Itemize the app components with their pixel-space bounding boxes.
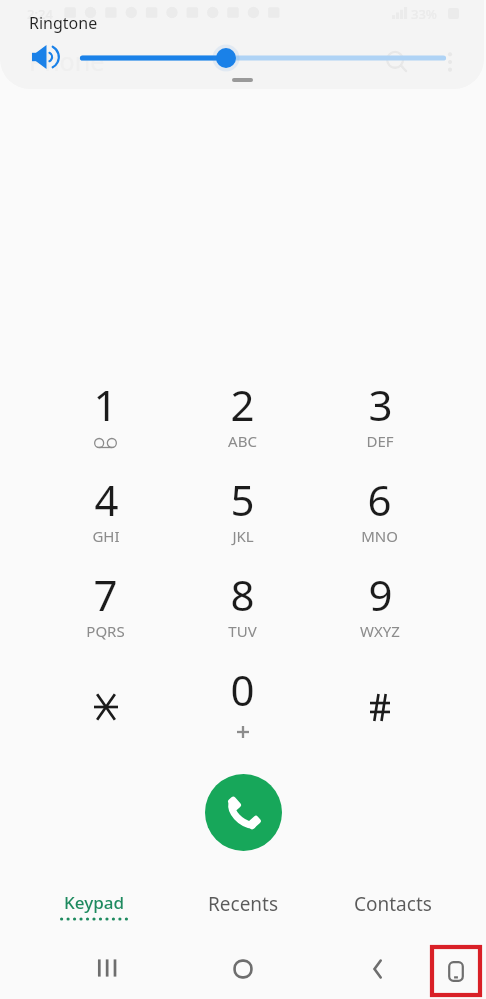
button[interactable]: Keypad xyxy=(26,891,162,939)
staticText: Recents xyxy=(208,891,279,917)
staticText: 2 xyxy=(230,376,255,433)
staticText: DEF xyxy=(366,431,394,451)
button[interactable]: Recents xyxy=(175,891,311,939)
staticText: Ringtone xyxy=(29,12,98,34)
staticText: Phone xyxy=(29,44,105,78)
button[interactable]: 7 xyxy=(37,566,174,661)
staticText: ABC xyxy=(228,431,257,451)
staticText: PQRS xyxy=(86,621,125,641)
staticText: 0 xyxy=(230,661,255,718)
staticText: MNO xyxy=(361,526,398,546)
button[interactable]: Call xyxy=(205,774,282,851)
staticText: 4 xyxy=(94,471,119,528)
button[interactable] xyxy=(37,661,174,756)
staticText: 7 xyxy=(93,566,118,623)
button[interactable]: 6 xyxy=(311,471,448,566)
button[interactable]: 5 xyxy=(174,471,311,566)
staticText: 6 xyxy=(367,471,392,528)
button[interactable]: 4 xyxy=(37,471,174,566)
staticText: 8 xyxy=(230,566,255,623)
button[interactable]: 8 xyxy=(174,566,311,661)
staticText: 3 xyxy=(368,376,393,433)
button[interactable]: Phone xyxy=(432,947,480,995)
staticText: WXYZ xyxy=(360,621,400,641)
button[interactable] xyxy=(311,661,448,756)
button[interactable]: Recent apps xyxy=(83,944,131,992)
button[interactable]: Expand volume panel xyxy=(232,78,253,82)
staticText: JKL xyxy=(232,526,254,546)
staticText: TUV xyxy=(228,621,257,641)
button[interactable]: Home xyxy=(219,945,267,993)
button[interactable] xyxy=(76,42,450,74)
staticText: 5 xyxy=(230,471,255,528)
button[interactable]: 9 xyxy=(311,566,448,661)
button[interactable]: Contacts xyxy=(325,891,461,939)
staticText: Keypad xyxy=(64,891,124,914)
staticText: GHI xyxy=(92,526,120,546)
staticText: 2:24 xyxy=(27,5,53,23)
button[interactable]: Back xyxy=(355,945,403,993)
staticText: 9 xyxy=(368,566,393,623)
staticText: Contacts xyxy=(354,891,432,917)
button[interactable]: 1 xyxy=(37,376,174,471)
button[interactable]: 3 xyxy=(311,376,448,471)
staticText: 33% xyxy=(411,5,437,23)
button[interactable]: 0 xyxy=(174,661,311,756)
button[interactable]: Mute ringtone xyxy=(32,45,61,69)
button[interactable]: 2 xyxy=(174,376,311,471)
staticText: 1 xyxy=(93,376,118,433)
